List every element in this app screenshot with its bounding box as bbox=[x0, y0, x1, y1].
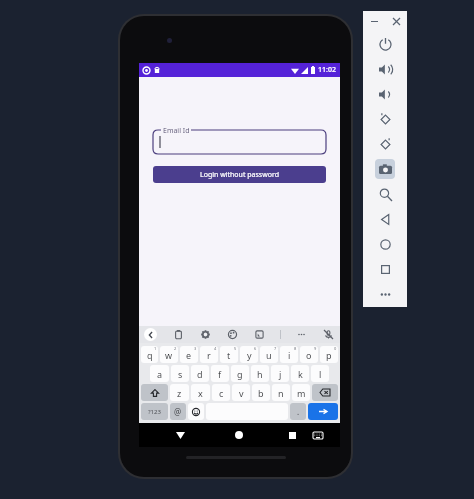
button[interactable]: n bbox=[272, 384, 290, 401]
button[interactable]: k bbox=[291, 365, 309, 382]
staticText: Login without password bbox=[200, 170, 279, 180]
staticText: n bbox=[278, 387, 284, 399]
button[interactable]: ?123 bbox=[141, 403, 168, 420]
staticText: 6 bbox=[254, 346, 257, 351]
button[interactable]: Email Id bbox=[153, 126, 326, 154]
staticText: e bbox=[186, 349, 192, 361]
staticText: z bbox=[177, 387, 182, 399]
staticText: q bbox=[147, 349, 153, 361]
button[interactable]: Stickers bbox=[226, 328, 239, 341]
button[interactable]: Volume down bbox=[363, 81, 407, 106]
staticText: d bbox=[197, 368, 203, 380]
button[interactable]: y bbox=[240, 346, 258, 363]
staticText: 0 bbox=[334, 346, 337, 351]
button[interactable]: Settings bbox=[199, 328, 212, 341]
button[interactable]: Minimize bbox=[367, 14, 381, 28]
staticText: v bbox=[239, 387, 244, 399]
staticText: x bbox=[198, 387, 203, 399]
button[interactable]: h bbox=[251, 365, 269, 382]
button[interactable]: Hide keyboard bbox=[172, 427, 188, 443]
button[interactable]: Login without password bbox=[153, 166, 326, 183]
staticText: 1 bbox=[154, 346, 157, 351]
button[interactable]: w bbox=[160, 346, 178, 363]
button[interactable]: m bbox=[292, 384, 310, 401]
staticText: h bbox=[257, 368, 263, 380]
staticText: f bbox=[218, 368, 222, 380]
staticText: a bbox=[157, 368, 163, 380]
button[interactable]: d bbox=[191, 365, 209, 382]
button[interactable]: Zoom bbox=[363, 181, 407, 206]
button[interactable]: i bbox=[280, 346, 298, 363]
button[interactable]: Clipboard bbox=[172, 328, 185, 341]
button[interactable]: a bbox=[150, 365, 169, 382]
button[interactable]: z bbox=[170, 384, 189, 401]
button[interactable]: l bbox=[311, 365, 329, 382]
button[interactable]: c bbox=[212, 384, 230, 401]
button[interactable]: @ bbox=[170, 403, 186, 420]
button[interactable]: v bbox=[232, 384, 250, 401]
staticText: Email Id bbox=[163, 126, 190, 136]
button[interactable]: Home bbox=[363, 231, 407, 256]
staticText: p bbox=[326, 349, 332, 361]
staticText: t bbox=[227, 349, 231, 361]
staticText: 4 bbox=[214, 346, 217, 351]
staticText: 9 bbox=[314, 346, 317, 351]
staticText: s bbox=[178, 368, 183, 380]
staticText: b bbox=[258, 387, 264, 399]
button[interactable]: Rotate left bbox=[363, 106, 407, 131]
button[interactable]: Overview bbox=[284, 427, 300, 443]
button[interactable]: Overview bbox=[363, 256, 407, 281]
button[interactable]: Rotate right bbox=[363, 131, 407, 156]
button[interactable]: r bbox=[200, 346, 218, 363]
button[interactable]: Volume up bbox=[363, 56, 407, 81]
button[interactable]: Close bbox=[389, 14, 403, 28]
button[interactable]: p bbox=[320, 346, 338, 363]
staticText: g bbox=[237, 368, 243, 380]
button[interactable]: Shift bbox=[141, 384, 168, 401]
button[interactable]: Backspace bbox=[312, 384, 338, 401]
button[interactable]: . bbox=[290, 403, 306, 420]
button[interactable]: Enter bbox=[308, 403, 338, 420]
staticText: o bbox=[306, 349, 312, 361]
staticText: w bbox=[165, 349, 173, 361]
button[interactable]: f bbox=[211, 365, 229, 382]
staticText: r bbox=[207, 349, 211, 361]
button[interactable]: Voice input off bbox=[322, 328, 335, 341]
button[interactable]: Back bbox=[363, 206, 407, 231]
button[interactable]: e bbox=[180, 346, 198, 363]
button[interactable]: b bbox=[252, 384, 270, 401]
button[interactable]: Switch keyboard bbox=[310, 427, 326, 443]
button[interactable]: More bbox=[363, 281, 407, 306]
button[interactable]: Back bbox=[144, 328, 157, 341]
button[interactable]: t bbox=[220, 346, 238, 363]
staticText: c bbox=[219, 387, 224, 399]
staticText: ?123 bbox=[148, 408, 161, 416]
button[interactable]: s bbox=[171, 365, 189, 382]
button[interactable]: u bbox=[260, 346, 278, 363]
button[interactable]: o bbox=[300, 346, 318, 363]
button[interactable]: GIF bbox=[253, 328, 266, 341]
button[interactable]: Screenshot bbox=[363, 156, 407, 181]
staticText: u bbox=[266, 349, 272, 361]
button[interactable]: x bbox=[191, 384, 210, 401]
staticText: 7 bbox=[274, 346, 277, 351]
staticText: y bbox=[247, 349, 252, 361]
staticText: 8 bbox=[294, 346, 297, 351]
staticText: 2 bbox=[174, 346, 177, 351]
staticText: . bbox=[297, 406, 300, 417]
button[interactable]: More options bbox=[295, 328, 308, 341]
button[interactable]: q bbox=[141, 346, 158, 363]
button[interactable]: Emoji bbox=[188, 403, 204, 420]
staticText: l bbox=[319, 368, 322, 380]
button[interactable]: j bbox=[271, 365, 289, 382]
button[interactable]: g bbox=[231, 365, 249, 382]
button[interactable]: Power bbox=[363, 31, 407, 56]
staticText: @ bbox=[174, 406, 182, 417]
staticText: j bbox=[279, 368, 282, 380]
button[interactable]: Home bbox=[231, 427, 247, 443]
staticText: k bbox=[298, 368, 303, 380]
staticText: 3 bbox=[194, 346, 197, 351]
staticText: i bbox=[288, 349, 291, 361]
staticText: 5 bbox=[234, 346, 237, 351]
